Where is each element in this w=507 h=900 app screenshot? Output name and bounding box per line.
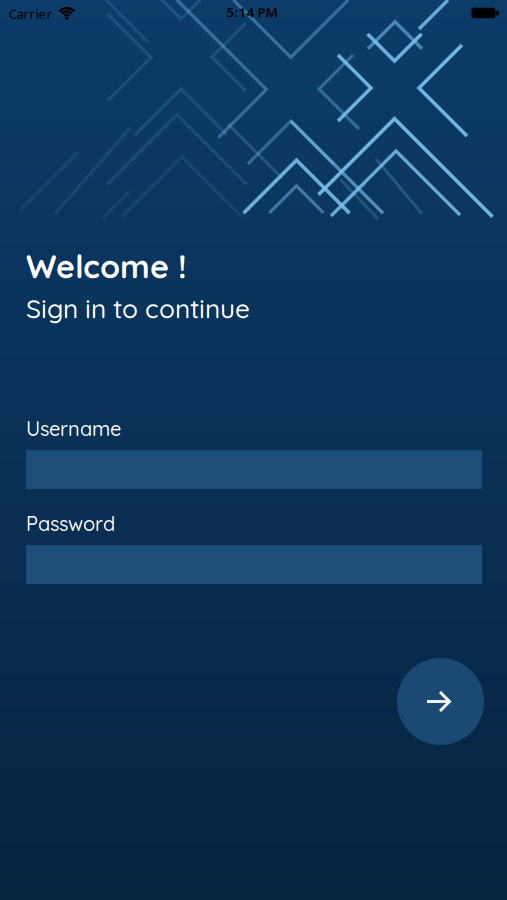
staticText: Welcome ! xyxy=(26,246,187,286)
staticText: Carrier xyxy=(8,5,52,22)
staticText: 5:14 PM xyxy=(226,3,277,21)
staticText: Sign in to continue xyxy=(26,292,250,325)
staticText: Password xyxy=(26,511,115,536)
button[interactable]: Sign in xyxy=(397,658,484,745)
staticText: Username xyxy=(26,416,121,441)
